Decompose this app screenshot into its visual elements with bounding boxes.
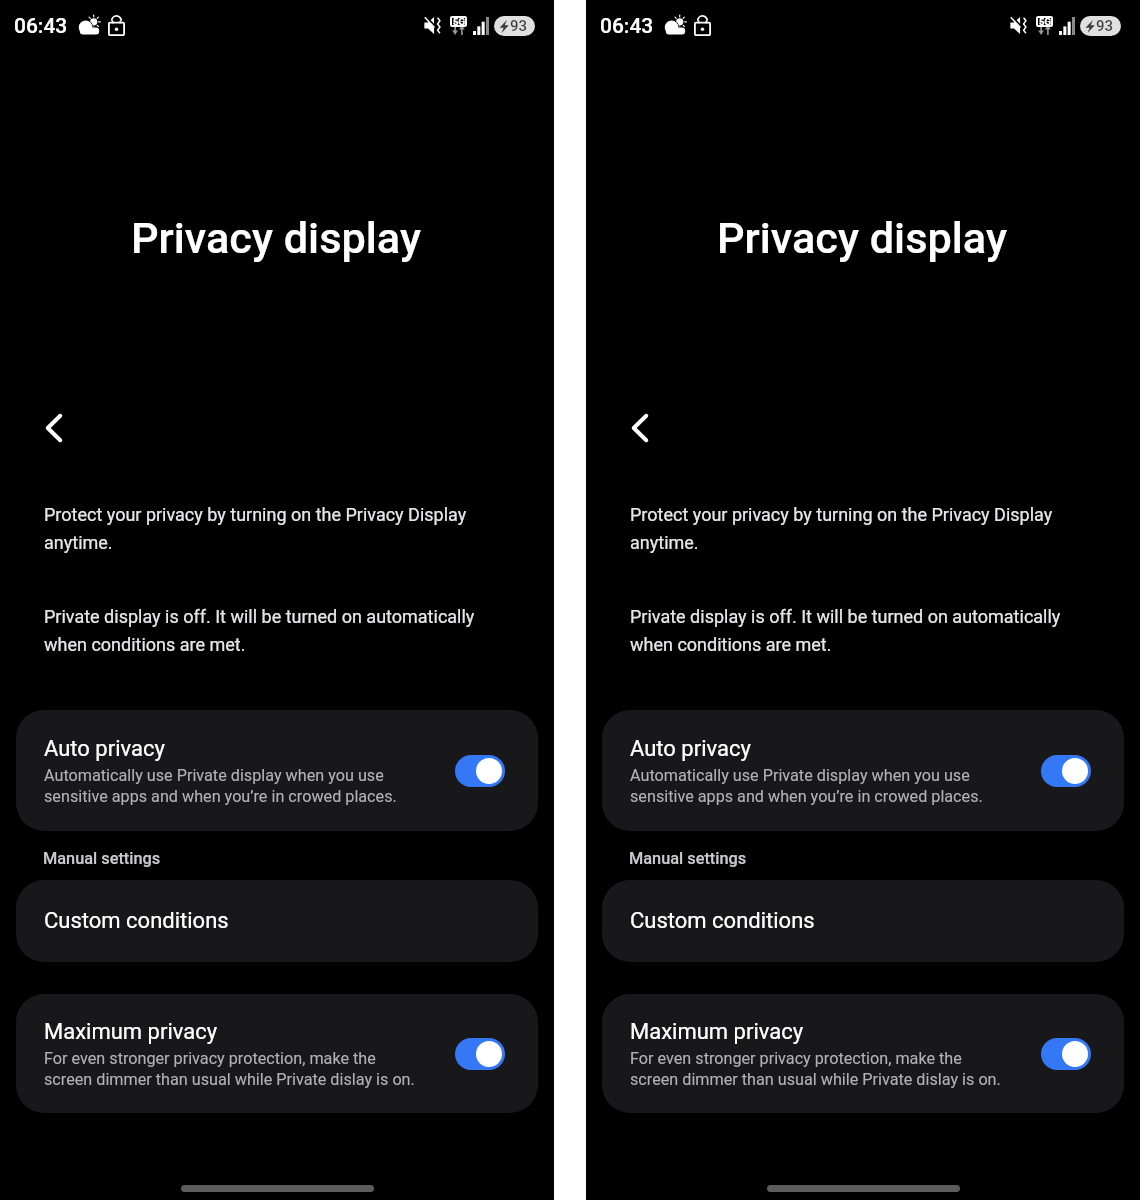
staticText: Auto privacy: [44, 736, 165, 762]
staticText: Auto privacy: [630, 736, 751, 762]
button[interactable]: Auto privacy toggle: [455, 755, 505, 787]
button[interactable]: Maximum privacy toggle: [1041, 1038, 1091, 1070]
staticText: Protect your privacy by turning on the P…: [44, 498, 467, 526]
staticText: Private display is off. It will be turne…: [630, 600, 1061, 628]
staticText: 93: [1096, 17, 1114, 35]
staticText: Manual settings: [629, 849, 747, 868]
button[interactable]: Custom conditions: [602, 880, 1124, 962]
staticText: Protect your privacy by turning on the P…: [630, 498, 1053, 526]
staticText: Automatically use Private display when y…: [44, 764, 397, 806]
button[interactable]: Auto privacy: [602, 710, 1124, 831]
staticText: 06:43: [600, 14, 654, 39]
button[interactable]: Navigate back: [24, 404, 72, 452]
staticText: Automatically use Private display when y…: [630, 764, 983, 806]
staticText: Manual settings: [43, 849, 161, 868]
staticText: Privacy display: [717, 213, 1007, 264]
staticText: For even stronger privacy protection, ma…: [630, 1047, 1001, 1089]
staticText: Custom conditions: [630, 908, 815, 934]
staticText: anytime.: [630, 526, 699, 554]
staticText: 5G: [1039, 16, 1051, 27]
button[interactable]: Maximum privacy: [16, 994, 538, 1113]
button[interactable]: Auto privacy: [16, 710, 538, 831]
staticText: Maximum privacy: [630, 1019, 804, 1045]
staticText: Custom conditions: [44, 908, 229, 934]
staticText: 06:43: [14, 14, 68, 39]
staticText: Private display is off. It will be turne…: [44, 600, 475, 628]
button[interactable]: Custom conditions: [16, 880, 538, 962]
staticText: when conditions are met.: [44, 628, 246, 656]
button[interactable]: Maximum privacy toggle: [455, 1038, 505, 1070]
staticText: For even stronger privacy protection, ma…: [44, 1047, 415, 1089]
button[interactable]: Navigate back: [610, 404, 658, 452]
staticText: anytime.: [44, 526, 113, 554]
button[interactable]: Maximum privacy: [602, 994, 1124, 1113]
staticText: when conditions are met.: [630, 628, 832, 656]
staticText: 93: [510, 17, 528, 35]
staticText: Maximum privacy: [44, 1019, 218, 1045]
button[interactable]: Auto privacy toggle: [1041, 755, 1091, 787]
staticText: Privacy display: [131, 213, 421, 264]
staticText: 5G: [453, 16, 465, 27]
